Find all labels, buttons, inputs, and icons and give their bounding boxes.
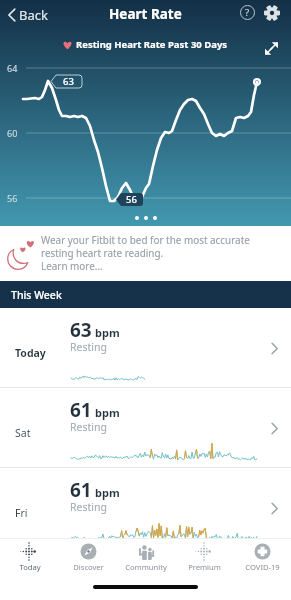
staticText: Resting (70, 500, 107, 514)
staticText: Wear your Fitbit to bed for the most acc… (41, 233, 250, 246)
staticText: COVID-19 (245, 562, 280, 572)
staticText: Today (19, 562, 41, 572)
staticText: 63 (70, 317, 92, 343)
staticText: Fri (15, 506, 28, 520)
staticText: Resting Heart Rate Past 30 Days (76, 38, 228, 51)
staticText: Back (19, 6, 48, 24)
staticText: Sat (15, 426, 31, 440)
button[interactable]: Today (0, 308, 291, 388)
staticText: resting heart rate reading. (41, 246, 164, 259)
staticText: 63 (63, 75, 74, 88)
button[interactable]: Today (0, 539, 59, 572)
button[interactable]: Wear your Fitbit to bed for the most acc… (0, 226, 291, 281)
button[interactable]: Settings (261, 2, 282, 23)
staticText: 56 (7, 192, 18, 204)
button[interactable]: Premium (175, 539, 233, 572)
staticText: Today (15, 346, 46, 360)
staticText: Community (125, 562, 167, 572)
button[interactable]: Discover (59, 539, 117, 572)
staticText: Learn more... (41, 259, 103, 272)
button[interactable]: Help (237, 2, 258, 23)
button[interactable]: COVID-19 (233, 539, 291, 572)
staticText: ? (245, 6, 250, 19)
staticText: bpm (95, 405, 120, 420)
button[interactable]: Expand chart (261, 38, 282, 59)
staticText: 60 (7, 127, 18, 139)
staticText: bpm (95, 325, 120, 340)
staticText: 61 (70, 477, 92, 503)
staticText: Resting (70, 420, 107, 434)
button[interactable]: Community (117, 539, 175, 572)
staticText: 61 (70, 397, 92, 423)
staticText: bpm (95, 485, 120, 500)
staticText: Heart Rate (109, 5, 182, 23)
staticText: Discover (73, 562, 104, 572)
button[interactable]: Back (4, 2, 54, 27)
button[interactable]: Sat (0, 388, 291, 468)
staticText: 56 (126, 193, 137, 206)
button[interactable]: Fri (0, 468, 291, 548)
staticText: Premium (188, 562, 221, 572)
staticText: This Week (11, 288, 62, 302)
staticText: 64 (7, 62, 18, 74)
staticText: Resting (70, 340, 107, 354)
